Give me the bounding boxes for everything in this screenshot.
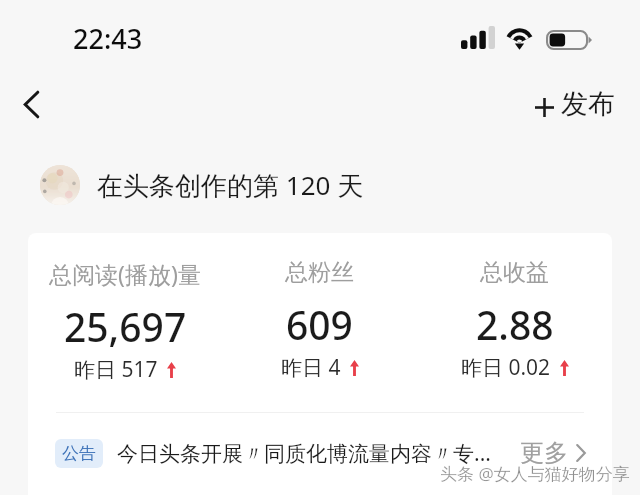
staticText: 更多 xyxy=(520,438,568,468)
button[interactable]: 在头条创作的第 120 天 xyxy=(40,165,640,205)
staticText: 公告 xyxy=(62,443,96,464)
staticText: 25,697 xyxy=(64,300,187,353)
staticText: 发布 xyxy=(561,87,615,121)
staticText: 头条 @女人与猫好物分享 xyxy=(440,462,630,485)
staticText: 总阅读(播放)量 xyxy=(49,258,201,289)
staticText: 总粉丝 xyxy=(285,258,354,287)
staticText: 在头条创作的第 120 天 xyxy=(97,167,364,203)
staticText: 22:43 xyxy=(73,20,143,57)
staticText: 昨日 4 xyxy=(281,353,341,382)
staticText: 今日头条开展〃同质化博流量内容〃专... xyxy=(117,439,491,468)
staticText: 昨日 0.02 xyxy=(461,353,551,382)
button[interactable]: 总阅读(播放)量 xyxy=(28,258,222,384)
button[interactable]: Back xyxy=(5,78,57,130)
button[interactable]: 总收益 xyxy=(417,258,612,382)
staticText: 总收益 xyxy=(480,258,549,287)
button[interactable]: 总粉丝 xyxy=(222,258,417,382)
staticText: 609 xyxy=(286,298,353,351)
staticText: 昨日 517 xyxy=(74,355,158,384)
staticText: 2.88 xyxy=(476,298,554,351)
button[interactable]: 发布 xyxy=(535,87,615,121)
button[interactable]: 公告 xyxy=(55,438,586,468)
